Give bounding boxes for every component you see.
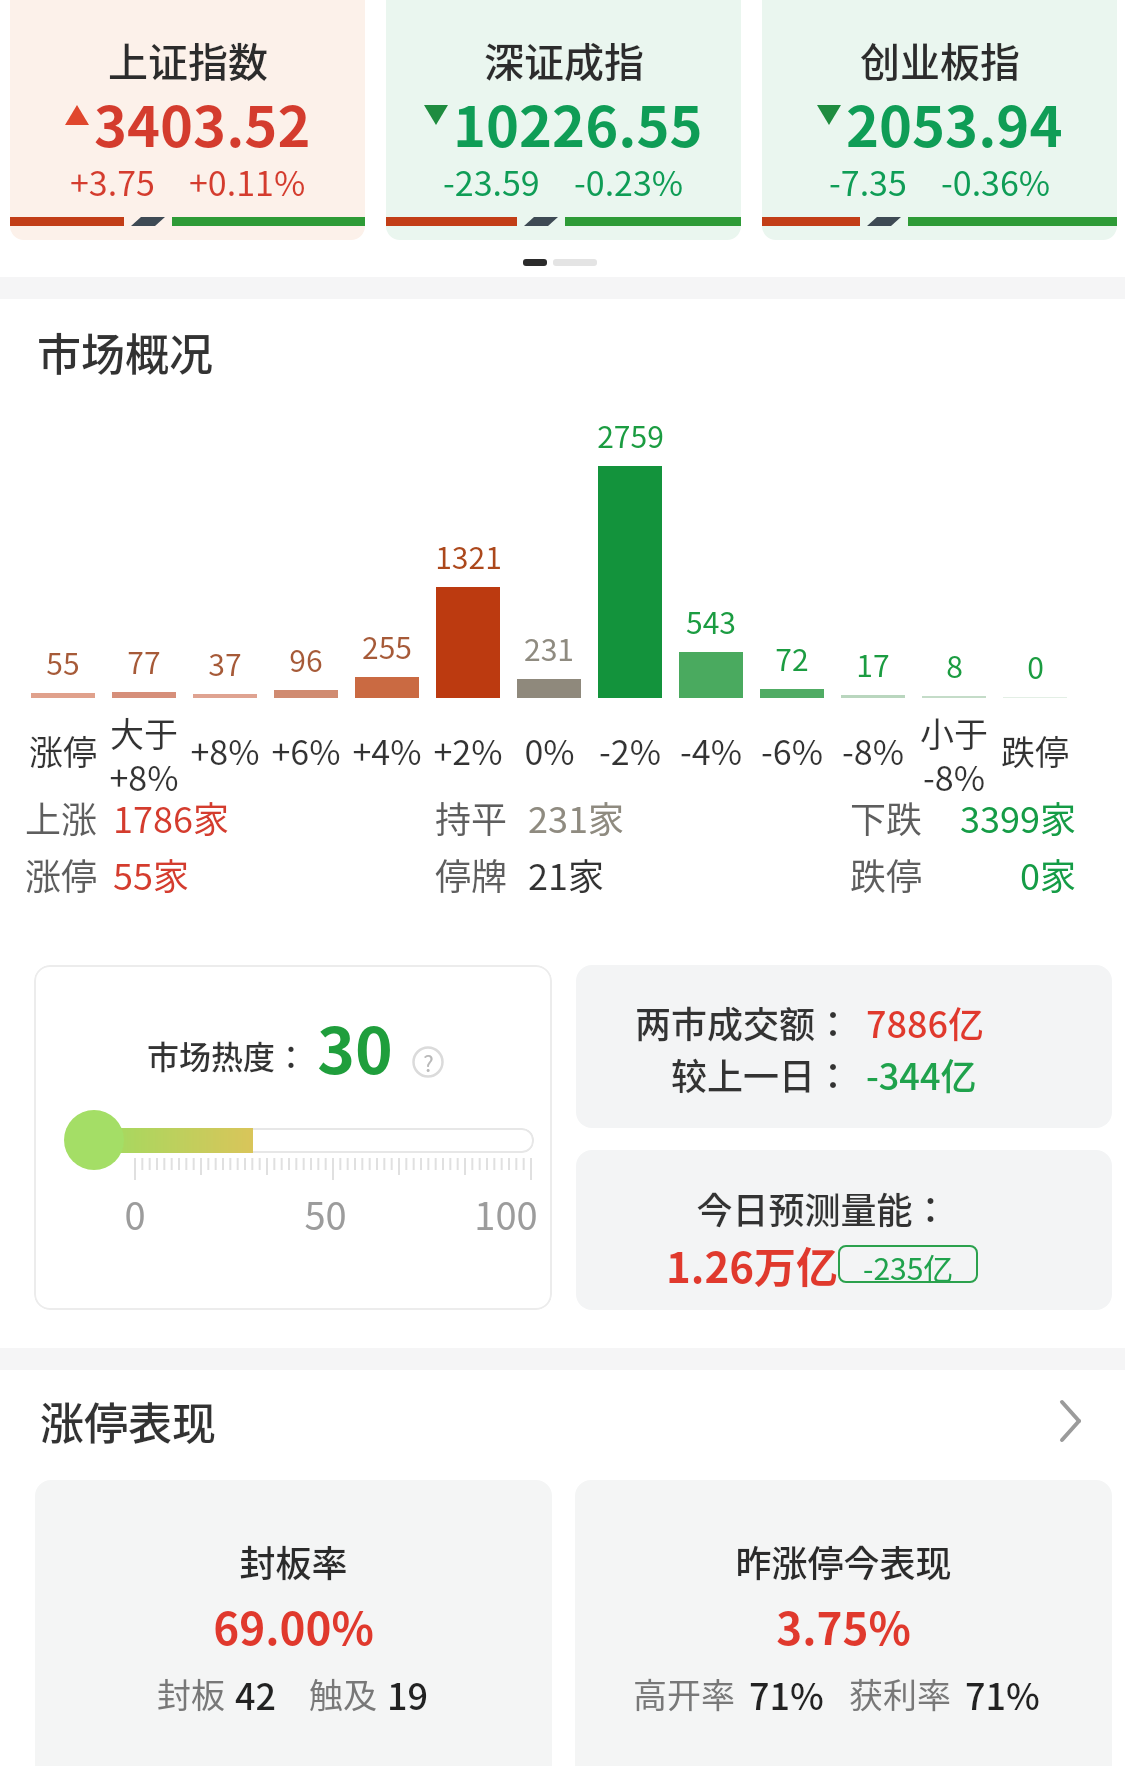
staticText: 100 [474, 1186, 538, 1241]
staticText: 昨涨停今表现 [735, 1535, 952, 1587]
staticText: 封板率 [239, 1535, 348, 1587]
staticText: 0家 [1020, 848, 1076, 900]
staticText: 跌停 [850, 848, 923, 900]
staticText: -2% [599, 726, 661, 775]
staticText: 2053.94 [846, 82, 1063, 148]
staticText: 0 [124, 1186, 146, 1241]
staticText: 21家 [528, 848, 604, 900]
staticText: +8% [190, 726, 260, 775]
button[interactable]: 上证指数 [10, 0, 365, 240]
staticText: 8 [946, 643, 963, 686]
staticText: 上涨 [25, 791, 98, 843]
button[interactable] [34, 965, 552, 1310]
staticText: 55 [46, 640, 80, 683]
staticText: +2% [433, 726, 503, 775]
button[interactable] [576, 965, 1112, 1128]
staticText: 获利率 [849, 1669, 951, 1718]
staticText: +4% [352, 726, 422, 775]
staticText: 创业板指 [860, 31, 1020, 89]
button[interactable]: 深证成指 [386, 0, 741, 240]
staticText: ? [423, 1046, 434, 1078]
staticText: 69.00% [213, 1594, 374, 1658]
staticText: 涨停表现 [40, 1389, 216, 1453]
staticText: 小于 -8% [920, 708, 988, 800]
staticText: 高开率 [633, 1669, 735, 1718]
staticText: +3.75 [70, 157, 155, 206]
staticText: 两市成交额： [635, 996, 852, 1048]
staticText: 大于 +8% [109, 708, 179, 800]
staticText: 市场概况 [37, 320, 213, 384]
staticText: 涨停 [29, 726, 97, 775]
staticText: -0.23% [574, 157, 684, 206]
staticText: 持平 [435, 791, 508, 843]
staticText: -23.59 [443, 157, 540, 206]
staticText: 96 [289, 637, 323, 680]
staticText: 较上一日： [671, 1048, 852, 1100]
staticText: 3399家 [960, 791, 1076, 843]
staticText: 30 [317, 1000, 393, 1093]
staticText: 50 [304, 1186, 347, 1241]
staticText: 71% [749, 1668, 824, 1720]
staticText: 7886亿 [866, 996, 985, 1048]
staticText: -235亿 [863, 1245, 954, 1283]
staticText: 下跌 [850, 791, 923, 843]
staticText: 37 [208, 641, 242, 684]
staticText: 55家 [113, 848, 189, 900]
staticText: 3403.52 [94, 82, 311, 148]
button[interactable] [35, 1480, 552, 1766]
staticText: 77 [127, 639, 161, 682]
staticText: 17 [856, 642, 890, 685]
staticText: 255 [362, 624, 412, 667]
staticText: 231 [524, 626, 574, 669]
staticText: 0 [1027, 644, 1044, 687]
staticText: 涨停 [25, 848, 98, 900]
staticText: 今日预测量能： [696, 1182, 949, 1234]
staticText: 封板 [157, 1669, 225, 1718]
staticText: -6% [761, 726, 823, 775]
staticText: -0.36% [941, 157, 1051, 206]
staticText: 543 [686, 599, 736, 642]
staticText: 19 [387, 1668, 429, 1720]
staticText: 10226.55 [453, 82, 703, 148]
staticText: -4% [680, 726, 742, 775]
staticText: 深证成指 [484, 31, 644, 89]
button[interactable] [576, 1150, 1112, 1310]
staticText: -7.35 [829, 157, 907, 206]
staticText: 3.75% [776, 1594, 911, 1658]
staticText: 触及 [309, 1669, 377, 1718]
staticText: 72 [775, 636, 809, 679]
staticText: +0.11% [189, 157, 306, 206]
staticText: 停牌 [435, 848, 508, 900]
staticText: 1321 [435, 534, 502, 577]
staticText: 42 [235, 1668, 277, 1720]
staticText: 231家 [528, 791, 624, 843]
button[interactable]: 创业板指 [762, 0, 1117, 240]
staticText: -344亿 [866, 1048, 977, 1100]
button[interactable]: 涨停表现 [0, 1386, 1125, 1456]
staticText: 1.26万亿 [666, 1234, 838, 1295]
staticText: -8% [842, 726, 904, 775]
staticText: 市场热度： [147, 1032, 308, 1078]
button[interactable] [575, 1480, 1112, 1766]
staticText: 71% [965, 1668, 1040, 1720]
staticText: 1786家 [113, 791, 229, 843]
staticText: +6% [271, 726, 341, 775]
staticText: 跌停 [1001, 726, 1069, 775]
staticText: 上证指数 [108, 31, 268, 89]
staticText: 2759 [597, 413, 664, 456]
staticText: 0% [524, 726, 575, 775]
